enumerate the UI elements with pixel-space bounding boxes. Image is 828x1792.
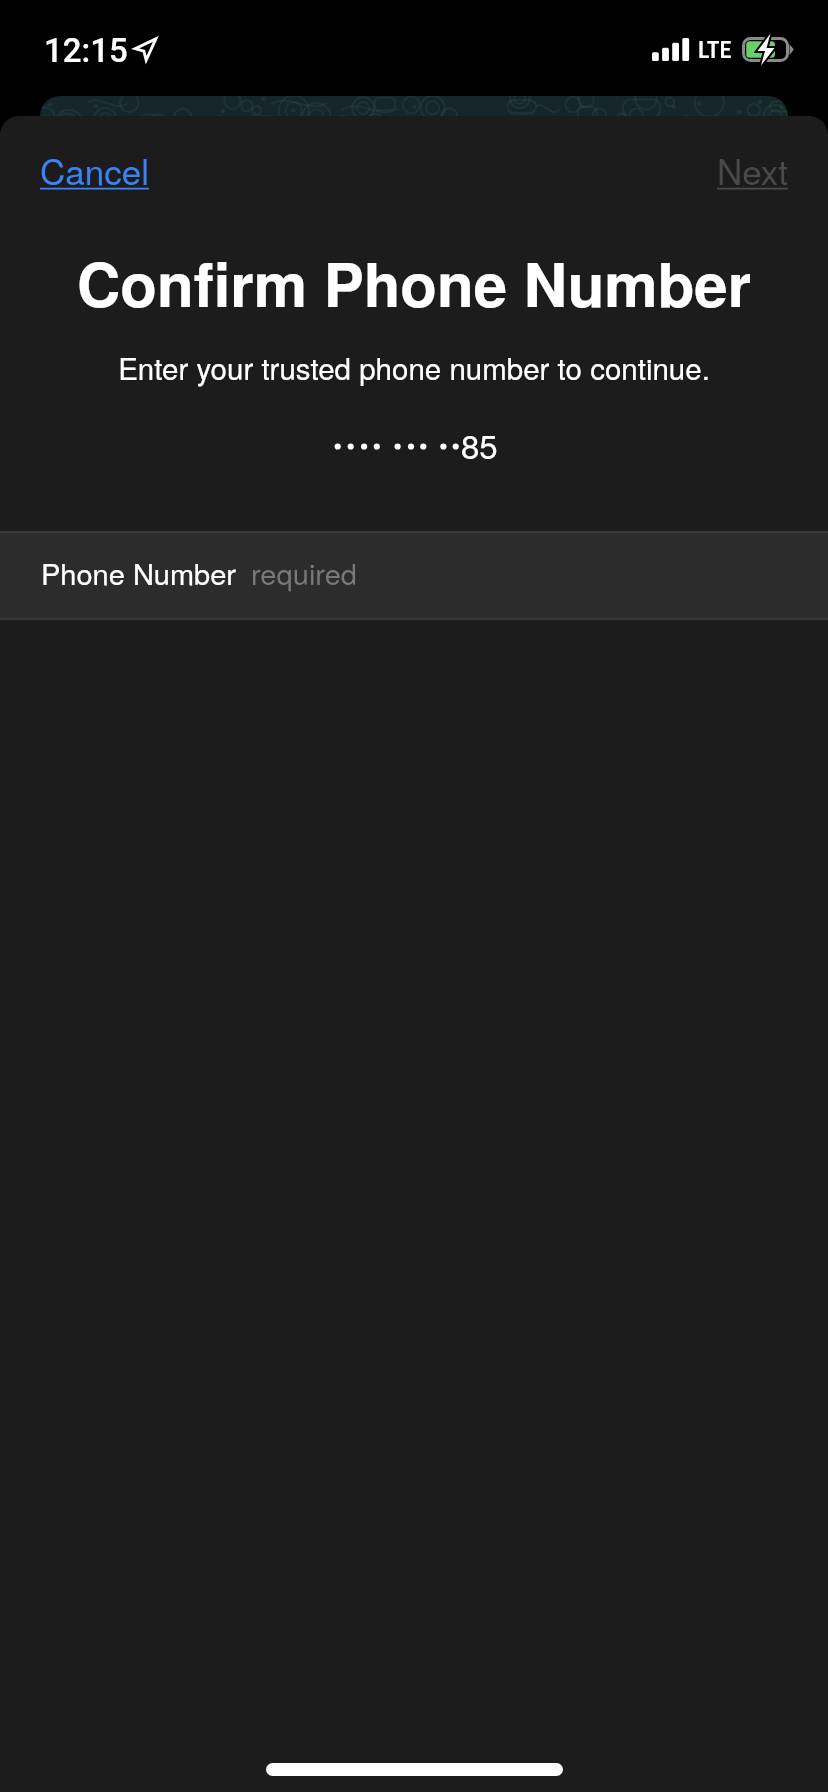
staticText: Phone Number: [41, 552, 237, 594]
staticText: Confirm Phone Number: [0, 239, 828, 325]
button[interactable]: Phone Number: [0, 533, 828, 618]
staticText: LTE: [698, 36, 732, 64]
other: Location: [134, 38, 157, 61]
button[interactable]: Cancel: [16, 129, 173, 211]
button[interactable]: Next: [693, 129, 813, 211]
staticText: Cancel: [40, 145, 149, 195]
staticText: Enter your trusted phone number to conti…: [0, 346, 828, 388]
staticText: 12:15: [44, 31, 128, 70]
staticText: 85: [461, 421, 498, 468]
staticText: Next: [717, 145, 789, 195]
staticText: required: [251, 552, 357, 594]
